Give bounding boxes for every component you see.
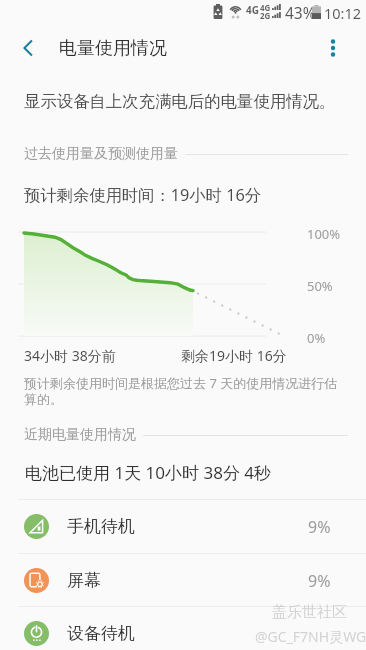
staticText: 手机待机: [67, 516, 135, 537]
staticText: 电量使用情况: [59, 37, 167, 60]
staticText: @GC_F7NH灵WG0: [255, 627, 366, 646]
staticText: 50%: [307, 277, 333, 295]
button[interactable]: 屏幕: [0, 554, 366, 607]
staticText: 0%: [307, 329, 326, 347]
staticText: 100%: [307, 225, 341, 243]
staticText: 过去使用量及预测使用量: [24, 145, 178, 163]
button[interactable]: Back: [6, 26, 50, 70]
button[interactable]: More options: [322, 26, 344, 70]
staticText: 10:12: [324, 3, 362, 23]
staticText: 4G: [260, 2, 271, 13]
button[interactable]: 设备待机: [0, 607, 366, 650]
staticText: 显示设备自上次充满电后的电量使用情况。: [24, 91, 336, 112]
staticText: 2G: [260, 10, 271, 21]
staticText: 设备待机: [67, 623, 135, 644]
button[interactable]: 手机待机: [0, 500, 366, 553]
staticText: 预计剩余使用时间：19小时 16分: [24, 184, 262, 206]
staticText: 9%: [308, 570, 331, 592]
staticText: 34小时 38分前: [24, 346, 116, 365]
staticText: 屏幕: [67, 570, 101, 591]
staticText: 盖乐世社区: [272, 603, 347, 622]
staticText: 预计剩余使用时间是根据您过去 7 天的使用情况进行估算的。: [24, 374, 342, 408]
staticText: 电池已使用 1天 10小时 38分 4秒: [25, 461, 272, 484]
staticText: 9%: [308, 516, 331, 538]
staticText: 剩余19小时 16分: [181, 346, 287, 365]
staticText: 43%: [285, 2, 316, 23]
staticText: 近期电量使用情况: [24, 426, 136, 444]
staticText: 4G: [246, 3, 259, 17]
